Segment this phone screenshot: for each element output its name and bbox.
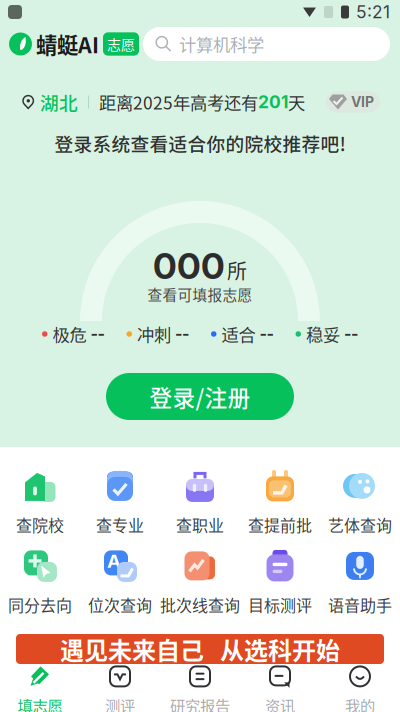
button[interactable]: 资讯 bbox=[240, 664, 320, 712]
staticText: A bbox=[107, 550, 121, 572]
staticText: 适合 bbox=[221, 321, 255, 347]
staticText: VIP bbox=[351, 93, 374, 110]
staticText: 查专业 bbox=[96, 513, 144, 536]
staticText: 000 bbox=[153, 244, 225, 288]
button[interactable]: 登录/注册 bbox=[106, 373, 294, 420]
button[interactable]: A bbox=[80, 546, 160, 620]
button[interactable]: 填志愿 bbox=[0, 664, 80, 712]
staticText: 填志愿 bbox=[17, 694, 62, 712]
button[interactable]: 查专业 bbox=[80, 466, 160, 540]
staticText: -- bbox=[90, 324, 104, 344]
staticText: 蜻蜓AI bbox=[36, 29, 99, 59]
staticText: 语音助手 bbox=[328, 593, 392, 616]
button[interactable]: 艺体查询 bbox=[320, 466, 400, 540]
staticText: 我的 bbox=[345, 694, 375, 712]
staticText: 5:21 bbox=[356, 1, 390, 22]
staticText: 冲刺 bbox=[137, 321, 171, 347]
staticText: 艺体查询 bbox=[328, 513, 392, 536]
button[interactable]: 测评 bbox=[80, 664, 160, 712]
staticText: 湖北 bbox=[40, 88, 78, 115]
button[interactable]: 查院校 bbox=[0, 466, 80, 540]
staticText: 查院校 bbox=[16, 513, 64, 536]
button[interactable]: 遇见未来自己 bbox=[16, 634, 384, 664]
staticText: 计算机科学 bbox=[179, 31, 264, 57]
staticText: 查职业 bbox=[176, 513, 224, 536]
staticText: 登录/注册 bbox=[149, 380, 250, 413]
staticText: -- bbox=[175, 324, 189, 344]
staticText: 稳妥 bbox=[306, 321, 340, 347]
staticText: 同分去向 bbox=[8, 593, 72, 616]
staticText: 研究报告 bbox=[170, 694, 230, 712]
staticText: -- bbox=[259, 324, 273, 344]
button[interactable]: VIP bbox=[326, 91, 380, 112]
staticText: -- bbox=[344, 324, 358, 344]
staticText: 查提前批 bbox=[248, 513, 312, 536]
button[interactable]: 查提前批 bbox=[240, 466, 320, 540]
staticText: 查看可填报志愿 bbox=[147, 284, 252, 305]
staticText: 目标测评 bbox=[248, 593, 312, 616]
staticText: 资讯 bbox=[265, 694, 295, 712]
staticText: 批次线查询 bbox=[160, 593, 240, 616]
button[interactable]: 我的 bbox=[320, 664, 400, 712]
staticText: 测评 bbox=[105, 694, 135, 712]
button[interactable]: 同分去向 bbox=[0, 546, 80, 620]
staticText: 遇见未来自己 bbox=[60, 632, 204, 666]
button[interactable]: 语音助手 bbox=[320, 546, 400, 620]
staticText: 天 bbox=[288, 89, 305, 115]
staticText: 所 bbox=[227, 256, 247, 285]
staticText: 志愿 bbox=[107, 34, 135, 54]
staticText: 登录系统查看适合你的院校推荐吧! bbox=[54, 129, 345, 156]
button[interactable]: 查职业 bbox=[160, 466, 240, 540]
staticText: 从选科开始 bbox=[220, 632, 340, 666]
button[interactable]: 批次线查询 bbox=[160, 546, 240, 620]
staticText: 位次查询 bbox=[88, 593, 152, 616]
staticText: 距离2025年高考还有 bbox=[99, 89, 258, 115]
staticText: 极危 bbox=[52, 321, 86, 347]
button[interactable]: 湖北 bbox=[22, 88, 78, 115]
button[interactable]: 目标测评 bbox=[240, 546, 320, 620]
staticText: 201 bbox=[258, 91, 288, 112]
button[interactable]: 研究报告 bbox=[160, 664, 240, 712]
